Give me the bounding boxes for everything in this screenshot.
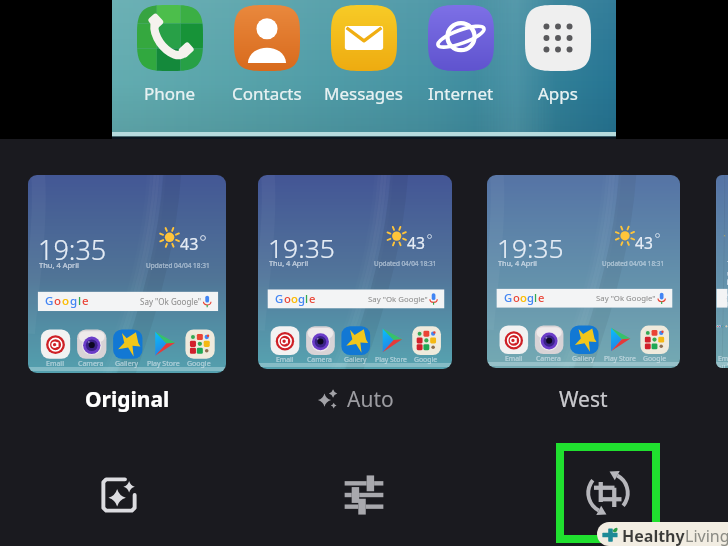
staticText: Play Store xyxy=(375,355,407,364)
staticText: Google xyxy=(414,355,438,364)
button[interactable]: Filters xyxy=(81,457,157,533)
staticText: Play Store xyxy=(147,359,180,369)
button[interactable]: More filters xyxy=(716,175,728,368)
staticText: 19:35 xyxy=(268,230,335,266)
staticText: Thu, 4 April xyxy=(727,258,728,308)
staticText: e xyxy=(538,290,545,305)
staticText: Say "Ok Google" xyxy=(368,294,428,305)
staticText: Phone xyxy=(144,82,196,105)
button[interactable]: 19:35 xyxy=(487,175,680,414)
staticText: l xyxy=(305,291,309,306)
staticText: l xyxy=(78,293,82,309)
staticText: Gallery xyxy=(344,355,367,364)
staticText: Living xyxy=(685,525,728,546)
staticText: o xyxy=(54,293,62,309)
staticText: 43 xyxy=(635,232,653,253)
staticText: g xyxy=(527,290,534,305)
button[interactable]: Phone xyxy=(121,0,219,105)
button[interactable]: Adjust xyxy=(326,457,402,533)
staticText: Messages xyxy=(324,82,404,105)
staticText: Camera xyxy=(78,359,104,369)
staticText: Email xyxy=(505,354,523,363)
staticText: Original xyxy=(85,385,170,414)
staticText: o xyxy=(291,291,298,306)
staticText: G xyxy=(504,290,513,305)
staticText: Auto xyxy=(347,385,394,414)
staticText: Internet xyxy=(428,82,494,105)
staticText: o xyxy=(284,291,291,306)
staticText: e xyxy=(309,291,316,306)
staticText: e xyxy=(82,293,89,309)
staticText: Say "Ok Google" xyxy=(140,296,202,307)
staticText: g xyxy=(298,291,305,306)
staticText: Email xyxy=(46,359,64,369)
staticText: Contacts xyxy=(232,82,302,105)
staticText: Thu, 4 April xyxy=(39,260,80,270)
staticText: Apps xyxy=(538,82,578,105)
button[interactable]: Internet xyxy=(412,0,510,105)
staticText: o xyxy=(513,290,520,305)
staticText: Updated 04/04 18:31 xyxy=(602,259,665,268)
staticText: 19:35 xyxy=(497,230,564,266)
staticText: Gallery xyxy=(115,359,139,369)
staticText: 43 xyxy=(407,232,425,253)
staticText: g xyxy=(70,293,78,309)
staticText: 19:35 xyxy=(38,231,107,268)
staticText: G xyxy=(275,291,284,306)
button[interactable]: 19:35 xyxy=(28,175,226,414)
staticText: Thu, 4 April xyxy=(269,258,309,268)
button[interactable]: 19:35 xyxy=(258,175,452,414)
staticText: Say "Ok Google" xyxy=(596,293,656,304)
button[interactable]: Apps xyxy=(509,0,607,105)
button[interactable]: Messages xyxy=(315,0,413,105)
staticText: 19:35 xyxy=(726,230,728,368)
button[interactable]: Contacts xyxy=(218,0,316,105)
staticText: Email xyxy=(718,354,728,368)
staticText: Play Store xyxy=(604,354,636,363)
staticText: Google xyxy=(643,354,666,363)
staticText: Email xyxy=(276,355,294,364)
staticText: Healthy xyxy=(622,525,685,546)
staticText: West xyxy=(559,385,608,414)
staticText: Camera xyxy=(536,354,561,363)
staticText: o xyxy=(62,293,70,309)
staticText: Camera xyxy=(307,355,332,364)
staticText: Updated 04/04 18:31 xyxy=(374,259,437,268)
staticText: Gallery xyxy=(572,354,595,363)
staticText: l xyxy=(534,290,538,305)
staticText: Thu, 4 April xyxy=(498,258,537,268)
staticText: G xyxy=(45,293,54,309)
staticText: Google xyxy=(187,359,211,369)
staticText: o xyxy=(520,290,527,305)
staticText: 43 xyxy=(180,233,199,255)
staticText: Updated 04/04 18:31 xyxy=(146,261,210,270)
button[interactable]: Crop and rotate xyxy=(556,443,660,543)
